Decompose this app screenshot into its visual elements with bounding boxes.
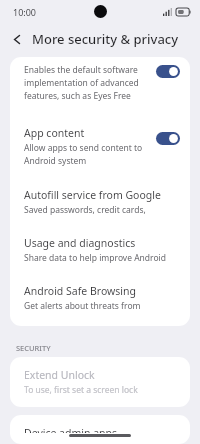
staticText: Get alerts about threats from dangerous … [24, 300, 182, 312]
button[interactable]: Enables the default software [10, 57, 190, 111]
button[interactable]: Device admin apps [10, 415, 190, 444]
button[interactable]: Android Safe Browsing [10, 284, 190, 312]
button[interactable]: Toggle [156, 65, 180, 78]
staticText: Android Safe Browsing [24, 284, 136, 298]
staticText: implementation of advanced camera [24, 77, 152, 89]
staticText: Enables the default software [24, 64, 138, 76]
button[interactable]: Autofill service from Google [10, 188, 190, 216]
staticText: Share data to help improve Android [24, 252, 166, 264]
staticText: More security & privacy [32, 30, 179, 48]
button[interactable]: App content [10, 123, 190, 177]
staticText: App content [24, 126, 85, 140]
button[interactable]: Back [7, 29, 27, 49]
staticText: Allow apps to send content to the [24, 142, 152, 154]
staticText: Android system [24, 155, 87, 167]
staticText: Extend Unlock [24, 368, 95, 382]
button[interactable]: Usage and diagnostics [10, 236, 190, 264]
staticText: Usage and diagnostics [24, 236, 136, 250]
staticText: features, such as Eyes Free videography. [24, 90, 152, 102]
staticText: SECURITY [16, 343, 51, 353]
staticText: Device admin apps [24, 426, 118, 433]
staticText: Autofill service from Google [24, 188, 161, 202]
staticText: Saved passwords, credit cards, addresses [24, 204, 182, 216]
staticText: 10:00 [13, 6, 37, 18]
button[interactable]: Extend Unlock [10, 357, 190, 407]
button[interactable]: Toggle [156, 132, 180, 145]
staticText: To use, first set a screen lock [24, 384, 138, 396]
